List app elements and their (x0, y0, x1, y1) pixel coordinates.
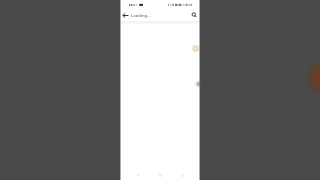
button[interactable]: Recent apps (177, 168, 187, 180)
button[interactable]: Home (155, 168, 165, 180)
staticText: Loading... (131, 13, 151, 19)
button[interactable]: Search (189, 10, 200, 21)
button[interactable]: Navigate up (120, 10, 131, 21)
